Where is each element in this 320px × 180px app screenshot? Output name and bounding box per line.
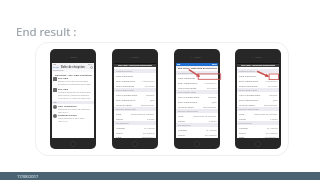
staticText: Demande - EDF Cible validation [55,73,92,76]
button[interactable]: EDF Cible [52,76,94,87]
staticText: En attente [143,131,155,134]
staticText: M. Martin [206,128,217,131]
staticText: Emis Demandeur [116,98,136,101]
button[interactable]: Date Demande [176,75,218,80]
staticText: En cours [268,84,278,87]
button[interactable]: Type [114,111,156,116]
button[interactable]: Emis Demandeur [237,78,279,83]
staticText: Nouvelle demande de congés pour le colla… [58,91,93,94]
staticText: M. Martin [267,126,278,129]
button[interactable]: Emis Demandeur [176,80,218,85]
button[interactable]: Valideur [114,125,156,130]
staticText: 09:41 [88,63,93,65]
staticText: Service Metier [116,103,132,106]
staticText: le 25/08/2017. Merci de traiter vite. [58,97,91,100]
staticText: Date [239,135,245,138]
button[interactable]: Nom Collaborateur [176,94,218,99]
button[interactable]: Statut Demande [176,85,218,90]
staticText: Statut [116,131,123,134]
staticText: Valideur [239,126,249,129]
button[interactable]: Durée [176,118,218,123]
button[interactable]: Service Metier [114,102,156,107]
button[interactable]: EDF Cible - demande personnelle [176,66,218,69]
staticText: En cours [145,84,155,87]
staticText: Type [116,112,122,115]
button[interactable]: Type [176,113,218,118]
button[interactable]: Date Demande [237,73,279,78]
button[interactable]: EDF Cible [52,87,94,101]
button[interactable]: Type [237,111,279,116]
staticText: Emis Demandeur [239,79,259,82]
staticText: INFORMATIONS [178,72,195,75]
button[interactable]: Service Metier [237,102,279,107]
staticText: Statut [239,131,246,134]
staticText: Exploitation [141,103,155,106]
staticText: Dupont [146,93,155,96]
staticText: Jean [212,100,217,103]
button[interactable]: Statut Demande [237,83,279,88]
button[interactable]: Date [237,135,279,138]
staticText: COLLABORATEUR [116,89,134,92]
button[interactable]: Demande - EDF Cible validation [52,72,94,76]
button[interactable]: Valideur [176,127,218,132]
staticText: Durée [178,119,185,122]
staticText: Demande validée [58,114,77,117]
button[interactable]: Statut [237,130,279,135]
staticText: SIRH Notification [58,105,77,108]
button[interactable]: Emis Demandeur [114,97,156,102]
button[interactable]: EDF Cible - demande personnelle [114,64,156,67]
staticText: Statut [178,133,185,136]
button[interactable]: Emis Demandeur [176,99,218,104]
button[interactable]: Demande validée [52,113,94,122]
button[interactable]: Durée [237,116,279,121]
button[interactable]: Nom Collaborateur [237,92,279,97]
staticText: Demande de congés [193,114,217,117]
button[interactable]: Durée [114,116,156,121]
staticText: EDF Cible - demande personnelle [118,64,152,67]
staticText: EDF Cible - demande personnelle [178,66,217,69]
button[interactable]: EDF Cible - demande personnelle [237,64,279,67]
button[interactable]: Statut [176,132,218,137]
staticText: Emis Demandeur [116,79,136,82]
button[interactable]: Date Demande [114,73,156,78]
button[interactable]: Boîtes [52,65,94,69]
staticText: VALIDATION [116,122,129,125]
button[interactable]: Date [114,135,156,138]
staticText: 25/08/2017 [265,135,278,138]
staticText: Service Metier [239,103,255,106]
button[interactable]: Statut Demande [114,83,156,88]
staticText: INFORMATIONS [116,70,133,73]
button[interactable]: Service Metier [176,104,218,109]
staticText: 14/08/2017 [142,79,155,82]
staticText: M. Martin [144,126,155,129]
other: Compose [90,66,93,69]
button[interactable]: Valideur [237,125,279,130]
staticText: Demande de congés [254,112,278,115]
button[interactable]: Emis Demandeur [114,78,156,83]
staticText: Date Demande [178,76,195,79]
staticText: Votre demande a été traitée [58,117,85,120]
staticText: 25/08/2017 [142,135,155,138]
staticText: 5 jours [270,117,278,120]
staticText: COLLABORATEUR [239,89,257,92]
staticText: Dupont [208,95,217,98]
staticText: Date [116,135,122,138]
button[interactable]: Nom Collaborateur [114,92,156,97]
staticText: Durée [239,117,246,120]
staticText: Exploitation [264,103,278,106]
button[interactable]: Emis Demandeur [237,97,279,102]
staticText: DETAILS DEMANDE [116,108,136,111]
staticText: Rechercher [53,69,64,72]
staticText: Exploitation [203,105,217,108]
other: Home [70,141,76,147]
staticText: Jean Dupont, validation attendue avant [58,94,93,97]
staticText: COLLABORATEUR [178,91,196,94]
staticText: VALIDATION [239,122,252,125]
button[interactable]: Statut [114,130,156,135]
staticText: Hier [53,101,57,104]
button[interactable]: SIRH Notification [52,104,94,113]
